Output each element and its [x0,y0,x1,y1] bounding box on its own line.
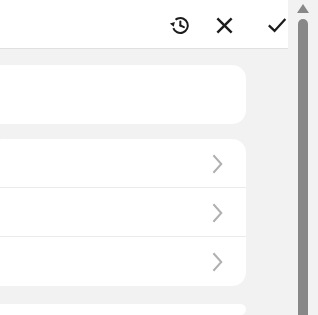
button[interactable] [0,139,246,188]
button[interactable]: Save [257,5,297,45]
button[interactable]: Discard [204,5,244,45]
button[interactable] [0,188,246,237]
button[interactable]: Revision history [159,5,199,45]
button[interactable] [0,237,246,286]
